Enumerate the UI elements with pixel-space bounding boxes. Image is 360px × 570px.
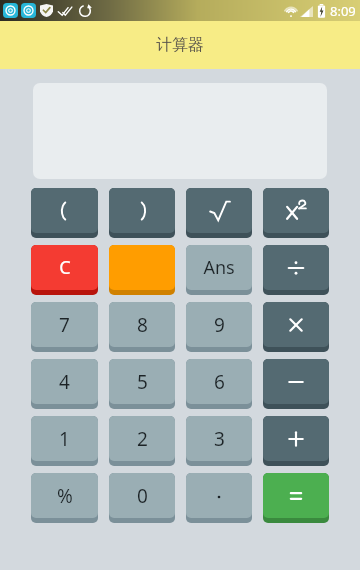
button[interactable]: Minus bbox=[263, 359, 329, 409]
staticText: 0 bbox=[137, 483, 148, 509]
button[interactable]: Multiply bbox=[263, 302, 329, 352]
button[interactable]: 9 bbox=[186, 302, 252, 352]
staticText: % bbox=[57, 483, 73, 509]
button[interactable]: Decimal point bbox=[186, 473, 252, 523]
staticText: 6 bbox=[214, 369, 225, 395]
staticText: 2 bbox=[137, 426, 148, 452]
button[interactable]: % bbox=[31, 473, 98, 523]
staticText: 7 bbox=[59, 312, 70, 338]
staticText: Ans bbox=[203, 255, 235, 280]
button[interactable]: Ans bbox=[186, 245, 252, 295]
staticText: 1 bbox=[59, 426, 70, 452]
button[interactable]: Plus bbox=[263, 416, 329, 466]
button[interactable]: 0 bbox=[109, 473, 175, 523]
staticText: 8 bbox=[137, 312, 148, 338]
staticText: 8:09 bbox=[330, 2, 356, 20]
button[interactable]: Divide bbox=[263, 245, 329, 295]
button[interactable]: Square bbox=[263, 188, 329, 238]
button[interactable]: 2 bbox=[109, 416, 175, 466]
staticText: 4 bbox=[59, 369, 70, 395]
button[interactable]: 4 bbox=[31, 359, 98, 409]
staticText: 9 bbox=[214, 312, 225, 338]
button[interactable]: 6 bbox=[186, 359, 252, 409]
button[interactable]: C bbox=[31, 245, 98, 295]
staticText: 计算器 bbox=[156, 35, 204, 55]
button[interactable]: Square root bbox=[186, 188, 252, 238]
button[interactable]: 8 bbox=[109, 302, 175, 352]
button[interactable]: 7 bbox=[31, 302, 98, 352]
button[interactable]: 5 bbox=[109, 359, 175, 409]
staticText: 3 bbox=[214, 426, 225, 452]
button[interactable]: Backspace bbox=[109, 245, 175, 295]
staticText: 5 bbox=[137, 369, 148, 395]
button[interactable]: Right parenthesis bbox=[109, 188, 175, 238]
button[interactable]: 1 bbox=[31, 416, 98, 466]
button[interactable]: Left parenthesis bbox=[31, 188, 98, 238]
button[interactable]: 3 bbox=[186, 416, 252, 466]
button[interactable]: Equals bbox=[263, 473, 329, 523]
staticText: C bbox=[59, 255, 71, 280]
